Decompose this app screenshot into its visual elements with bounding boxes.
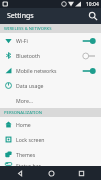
button[interactable]: Search xyxy=(85,8,101,24)
staticText: WIRELESS & NETWORKS xyxy=(4,26,52,32)
button[interactable]: More... xyxy=(0,93,101,108)
staticText: 10:04 xyxy=(86,1,99,8)
staticText: Settings xyxy=(7,11,34,21)
button[interactable]: Home xyxy=(41,166,61,180)
button[interactable]: Themes xyxy=(0,147,101,162)
button[interactable]: Status bar xyxy=(0,162,101,166)
staticText: Lock screen xyxy=(16,136,101,143)
staticText: Themes xyxy=(16,151,101,158)
staticText: Mobile networks xyxy=(16,67,82,74)
button[interactable]: Mobile networks xyxy=(0,63,101,78)
staticText: PERSONALIZATION xyxy=(4,110,43,116)
staticText: More... xyxy=(16,97,101,104)
button[interactable]: Lock screen xyxy=(0,132,101,147)
staticText: Wi-Fi xyxy=(16,37,82,44)
staticText: Home xyxy=(16,121,101,128)
staticText: Status bar xyxy=(16,162,101,166)
staticText: Bluetooth xyxy=(16,52,82,59)
staticText: Data usage xyxy=(16,82,101,89)
button[interactable]: Recent apps xyxy=(71,166,91,180)
button[interactable]: Home xyxy=(0,117,101,132)
button[interactable]: Wi-Fi xyxy=(0,33,101,48)
button[interactable]: Bluetooth xyxy=(0,48,101,63)
button[interactable]: Data usage xyxy=(0,78,101,93)
button[interactable]: Back xyxy=(10,166,30,180)
